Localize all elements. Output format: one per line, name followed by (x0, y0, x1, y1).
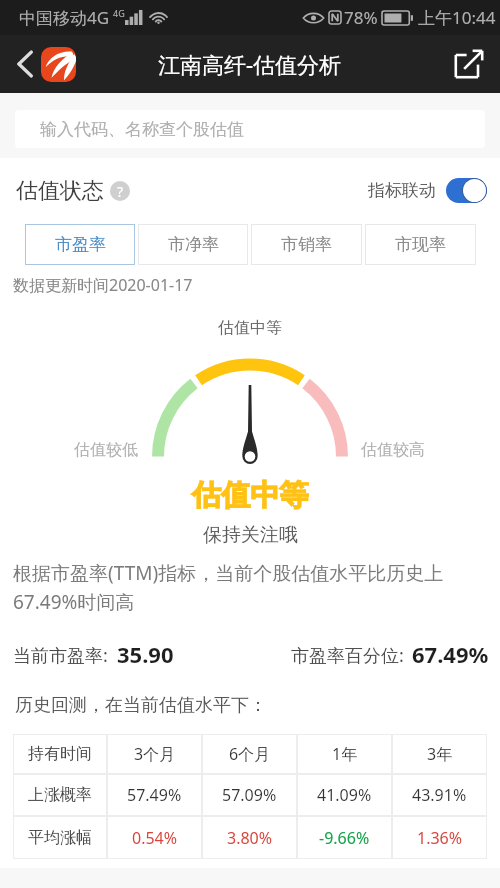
staticText: 市盈率百分位: (291, 643, 404, 668)
staticText: 平均涨幅 (28, 828, 92, 848)
staticText: 3.80% (227, 827, 273, 849)
button[interactable]: 输入代码、名称查个股估值 (15, 110, 485, 148)
staticText: 4G (113, 7, 125, 19)
staticText: 江南高纤-估值分析 (158, 49, 342, 79)
staticText: 估值状态 (16, 177, 104, 205)
staticText: 市净率 (168, 234, 219, 255)
staticText: 41.09% (317, 784, 372, 806)
staticText: 3年 (427, 743, 453, 765)
button[interactable]: 市销率 (251, 224, 362, 265)
staticText: 35.90 (117, 639, 174, 669)
staticText: 中国移动4G (19, 6, 110, 29)
staticText: 估值中等 (192, 477, 308, 514)
button[interactable]: Back (4, 45, 42, 83)
staticText: 估值较高 (361, 440, 425, 460)
staticText: 市销率 (281, 234, 332, 255)
staticText: 57.09% (222, 784, 277, 806)
staticText: 当前市盈率: (13, 643, 108, 668)
staticText: 估值较低 (74, 440, 138, 460)
staticText: 57.49% (127, 784, 182, 806)
staticText: 3个月 (134, 743, 176, 765)
staticText: 0.54% (132, 827, 178, 849)
staticText: 估值中等 (218, 318, 282, 338)
staticText: 43.91% (412, 784, 467, 806)
staticText: 上午10:44 (418, 6, 496, 29)
staticText: 保持关注哦 (203, 523, 298, 547)
staticText: ? (117, 182, 124, 201)
staticText: 67.49% (412, 639, 489, 669)
staticText: 市现率 (395, 234, 446, 255)
button[interactable]: Share (454, 49, 484, 79)
button[interactable]: 指标联动 (446, 178, 487, 203)
staticText: 指标联动 (368, 180, 436, 201)
staticText: 1.36% (417, 827, 463, 849)
staticText: 78% (344, 6, 378, 29)
staticText: 市盈率 (55, 234, 106, 255)
staticText: 上涨概率 (28, 785, 92, 805)
button[interactable]: Help (110, 181, 130, 201)
staticText: 根据市盈率(TTM)指标，当前个股估值水平比历史上67.49%时间高 (13, 560, 489, 615)
staticText: 1年 (332, 743, 358, 765)
staticText: 历史回测，在当前估值水平下： (15, 694, 267, 717)
button[interactable]: 市盈率 (25, 224, 135, 265)
button[interactable]: 市现率 (365, 224, 476, 265)
staticText: 持有时间 (28, 744, 92, 764)
staticText: 输入代码、名称查个股估值 (40, 119, 244, 140)
button[interactable]: 市净率 (138, 224, 248, 265)
staticText: 数据更新时间2020-01-17 (13, 274, 193, 296)
staticText: -9.66% (319, 827, 370, 849)
staticText: 6个月 (229, 743, 271, 765)
